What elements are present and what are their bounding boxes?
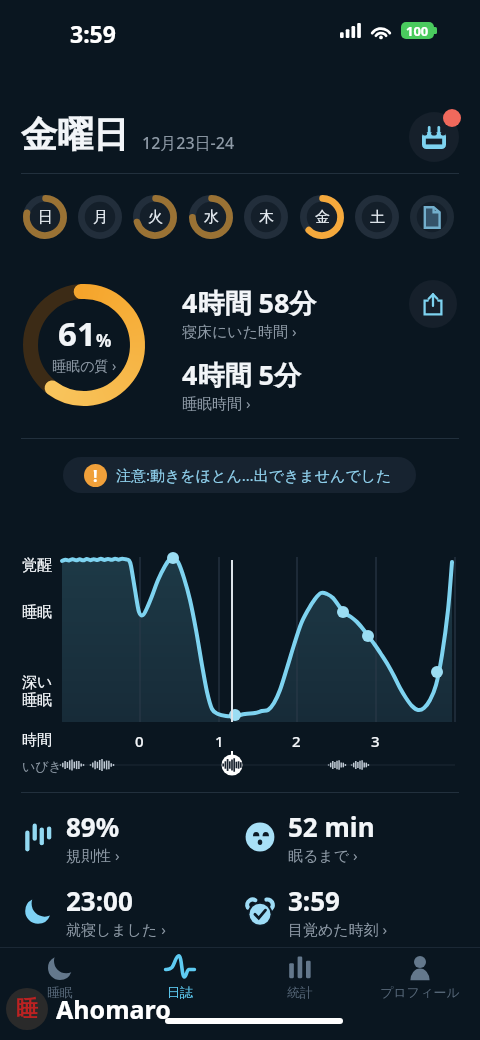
staticText: 火	[148, 208, 163, 227]
staticText: 金曜日	[21, 112, 129, 157]
staticText: 睡眠	[47, 984, 73, 1000]
staticText: 日	[38, 208, 53, 227]
button[interactable]: !	[63, 457, 416, 493]
staticText: 睡眠の質 ›	[52, 356, 117, 375]
staticText: プロフィール	[380, 984, 460, 1000]
staticText: 木	[259, 208, 274, 227]
staticText: 目覚めた時刻 ›	[288, 919, 388, 939]
staticText: 2	[292, 731, 301, 751]
button[interactable]: 金	[300, 195, 344, 239]
staticText: 52 min	[288, 809, 375, 844]
staticText: 水	[204, 208, 219, 227]
button[interactable]: Share	[409, 280, 457, 328]
staticText: いびき	[22, 758, 62, 774]
staticText: 時間	[22, 731, 52, 750]
staticText: 覚醒	[22, 556, 52, 575]
button[interactable]: 睡眠	[0, 947, 120, 1005]
button[interactable]: 23:00	[22, 880, 234, 942]
staticText: 12月23日-24	[142, 132, 235, 154]
staticText: 89%	[66, 809, 120, 844]
staticText: 統計	[287, 984, 313, 1000]
staticText: 4時間 58分	[182, 284, 317, 321]
button[interactable]: 日誌	[120, 947, 240, 1005]
staticText: 深い 睡眠	[22, 673, 53, 710]
staticText: 0	[135, 731, 144, 751]
button[interactable]: 水	[189, 195, 233, 239]
button[interactable]: 土	[355, 195, 399, 239]
button[interactable]: 89%	[22, 806, 234, 868]
button[interactable]: 4時間 5分	[182, 356, 301, 413]
button[interactable]: 61	[16, 277, 152, 413]
staticText: 睡眠時間 ›	[182, 393, 251, 413]
button[interactable]: 日	[23, 195, 67, 239]
button[interactable]: 火	[133, 195, 177, 239]
staticText: 100	[406, 22, 429, 39]
staticText: 月	[93, 208, 108, 227]
button[interactable]: 4時間 58分	[182, 284, 317, 341]
button[interactable]: 統計	[240, 947, 360, 1005]
staticText: 日誌	[167, 984, 193, 1000]
button[interactable]: 3:59	[244, 880, 456, 942]
button[interactable]: Notes	[410, 195, 454, 239]
staticText: 土	[370, 208, 385, 227]
button[interactable]: プロフィール	[360, 947, 480, 1005]
staticText: 金	[315, 208, 330, 227]
button[interactable]: 52 min	[244, 806, 456, 868]
staticText: 3:59	[288, 883, 340, 918]
staticText: 就寝しました ›	[66, 919, 166, 939]
staticText: 3:59	[70, 18, 116, 49]
staticText: %	[96, 329, 112, 352]
staticText: 61	[58, 311, 96, 356]
staticText: 寝床にいた時間 ›	[182, 321, 297, 341]
staticText: 睡眠	[22, 603, 52, 622]
staticText: 4時間 5分	[182, 356, 301, 393]
staticText: Ahomaro	[56, 992, 171, 1026]
button[interactable]: Calendar	[409, 112, 459, 162]
button[interactable]: 月	[78, 195, 122, 239]
staticText: 1	[215, 731, 224, 751]
staticText: 23:00	[66, 883, 133, 918]
staticText: !	[93, 465, 98, 487]
staticText: 眠るまで ›	[288, 845, 358, 865]
button[interactable]: 木	[244, 195, 288, 239]
staticText: 注意:動きをほとん…出できませんでした	[116, 465, 392, 485]
staticText: 3	[371, 731, 380, 751]
staticText: 睡	[16, 995, 38, 1023]
staticText: 規則性 ›	[66, 845, 120, 865]
